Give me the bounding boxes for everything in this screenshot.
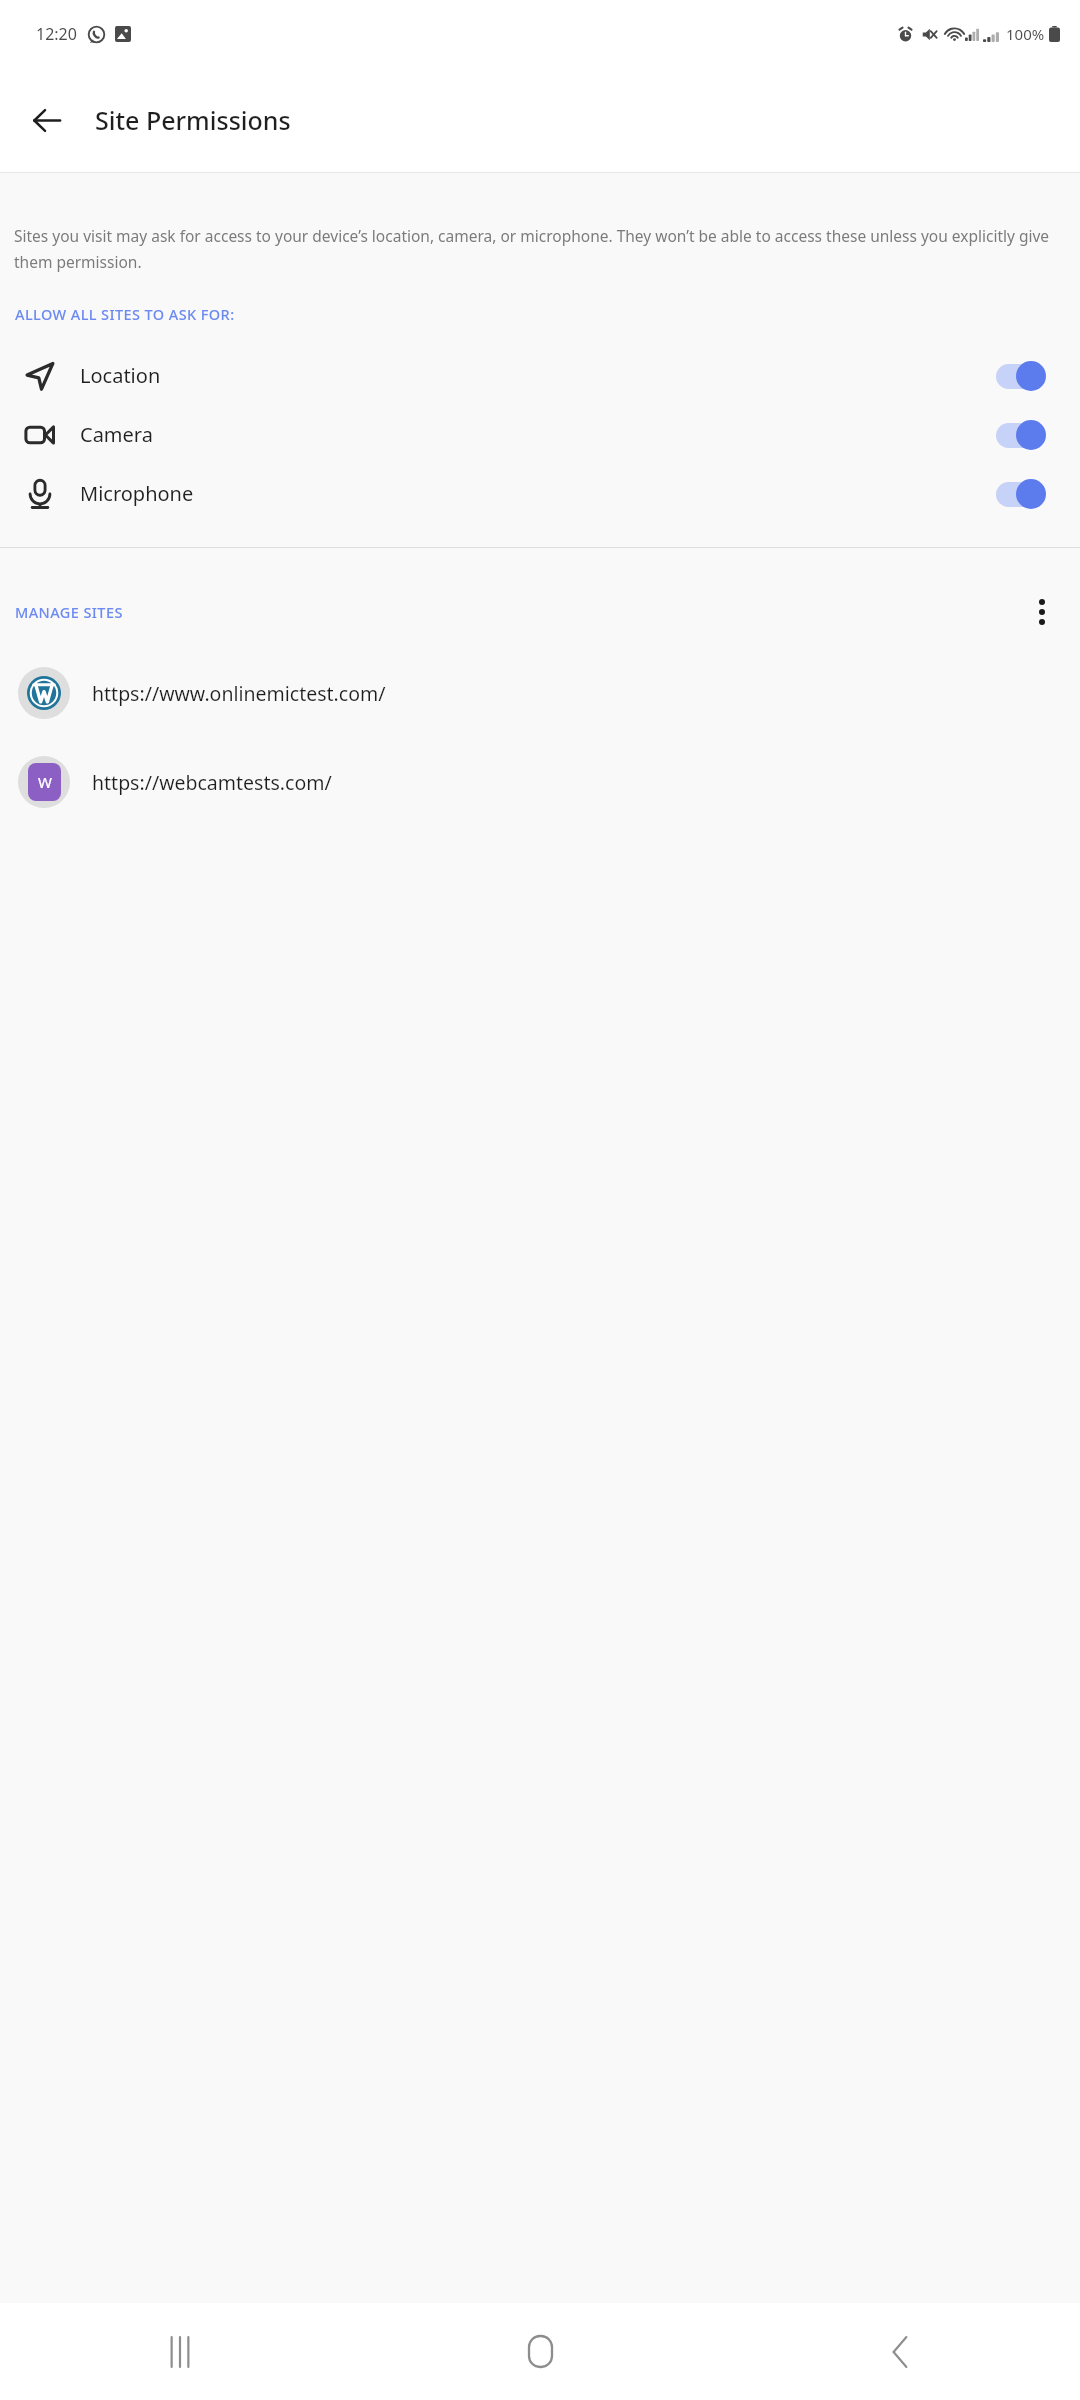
- button[interactable]: Recent apps: [0, 2303, 360, 2400]
- staticText: W: [38, 772, 52, 792]
- button[interactable]: Toggle: [992, 415, 1048, 455]
- button[interactable]: Back: [20, 94, 72, 146]
- button[interactable]: https://www.onlinemictest.com/: [0, 662, 1080, 724]
- staticText: Location: [80, 362, 161, 389]
- staticText: Microphone: [80, 480, 194, 507]
- button[interactable]: W: [0, 751, 1080, 813]
- staticText: 12:20: [36, 23, 77, 45]
- button[interactable]: Toggle: [992, 356, 1048, 396]
- button[interactable]: Camera: [0, 405, 1080, 464]
- button[interactable]: Microphone: [0, 464, 1080, 523]
- staticText: Site Permissions: [95, 103, 291, 137]
- button[interactable]: Home: [360, 2303, 720, 2400]
- staticText: ALLOW ALL SITES TO ASK FOR:: [15, 304, 235, 324]
- button[interactable]: Back: [720, 2303, 1080, 2400]
- staticText: 100%: [1006, 24, 1045, 44]
- staticText: https://www.onlinemictest.com/: [92, 680, 386, 707]
- button[interactable]: Toggle: [992, 474, 1048, 514]
- button[interactable]: Location: [0, 346, 1080, 405]
- button[interactable]: More options: [1018, 588, 1066, 636]
- staticText: Camera: [80, 421, 153, 448]
- staticText: MANAGE SITES: [15, 602, 123, 622]
- staticText: https://webcamtests.com/: [92, 769, 332, 796]
- staticText: Sites you visit may ask for access to yo…: [14, 225, 1066, 273]
